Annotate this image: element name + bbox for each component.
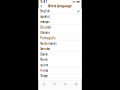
staticText: Português bbox=[40, 36, 55, 40]
staticText: 9:41 bbox=[41, 0, 48, 3]
staticText: Français bbox=[40, 20, 49, 24]
button[interactable]: Svenska bbox=[38, 46, 82, 52]
button[interactable]: Search bbox=[49, 81, 60, 90]
button[interactable]: Nederlands bbox=[38, 41, 82, 46]
button[interactable]: Português bbox=[38, 36, 82, 41]
staticText: Nederlands bbox=[40, 42, 56, 45]
button[interactable]: Italiano bbox=[38, 30, 82, 36]
button[interactable]: Français bbox=[38, 19, 82, 25]
button[interactable]: Home bbox=[38, 81, 49, 90]
staticText: Svenska bbox=[40, 47, 49, 51]
staticText: Norsk bbox=[40, 58, 47, 61]
button[interactable]: Suomi bbox=[38, 63, 82, 68]
button[interactable]: English bbox=[38, 9, 82, 14]
button[interactable]: Deutsch bbox=[38, 25, 82, 30]
staticText: ▮▮▮ bbox=[72, 1, 75, 2]
staticText: Italiano bbox=[40, 31, 50, 34]
button[interactable]: Alerts bbox=[60, 81, 71, 90]
button[interactable]: Español bbox=[38, 14, 82, 19]
button[interactable]: Dansk bbox=[38, 52, 82, 57]
button[interactable]: Polski bbox=[38, 68, 82, 73]
staticText: Deutsch bbox=[40, 26, 51, 29]
staticText: Suomi bbox=[40, 63, 48, 67]
button[interactable]: Türkçe bbox=[38, 73, 82, 79]
button[interactable]: Settings bbox=[71, 81, 82, 90]
staticText: Dansk bbox=[40, 53, 47, 56]
staticText: English bbox=[40, 9, 50, 13]
button[interactable]: Norsk bbox=[38, 57, 82, 63]
staticText: Español bbox=[40, 15, 50, 18]
staticText: Select Language bbox=[48, 4, 72, 8]
button[interactable]: Back bbox=[38, 4, 44, 9]
staticText: Polski bbox=[40, 69, 48, 72]
staticText: Türkçe bbox=[40, 74, 48, 78]
